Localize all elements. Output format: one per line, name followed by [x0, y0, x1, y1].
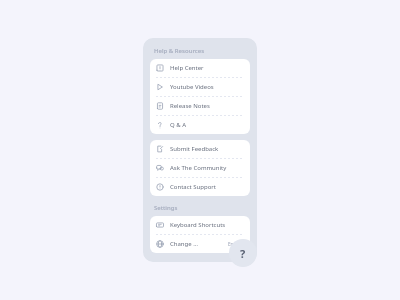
button[interactable]: Youtube Videos	[150, 78, 250, 96]
staticText: ?	[240, 246, 246, 261]
staticText: Submit Feedback	[170, 145, 219, 153]
button[interactable]: Change Language...	[150, 235, 250, 253]
button[interactable]: Ask The Community	[150, 159, 250, 177]
staticText: Help & Resources	[154, 47, 205, 55]
staticText: Keyboard Shortcuts	[170, 221, 226, 229]
button[interactable]: Help	[229, 239, 257, 267]
staticText: Youtube Videos	[170, 83, 214, 91]
staticText: English	[228, 241, 244, 247]
staticText: Release Notes	[170, 102, 210, 110]
staticText: Ask The Community	[170, 164, 227, 172]
staticText: Change Language...	[170, 240, 199, 248]
staticText: Settings	[154, 204, 178, 212]
button[interactable]: Submit Feedback	[150, 140, 250, 158]
button[interactable]: Contact Support	[150, 178, 250, 196]
button[interactable]: Q & A	[150, 116, 250, 134]
staticText: Help Center	[170, 64, 204, 72]
button[interactable]: Keyboard Shortcuts	[150, 216, 250, 234]
staticText: Contact Support	[170, 183, 216, 191]
button[interactable]: Release Notes	[150, 97, 250, 115]
staticText: Q & A	[170, 121, 187, 129]
button[interactable]: Help Center	[150, 59, 250, 77]
